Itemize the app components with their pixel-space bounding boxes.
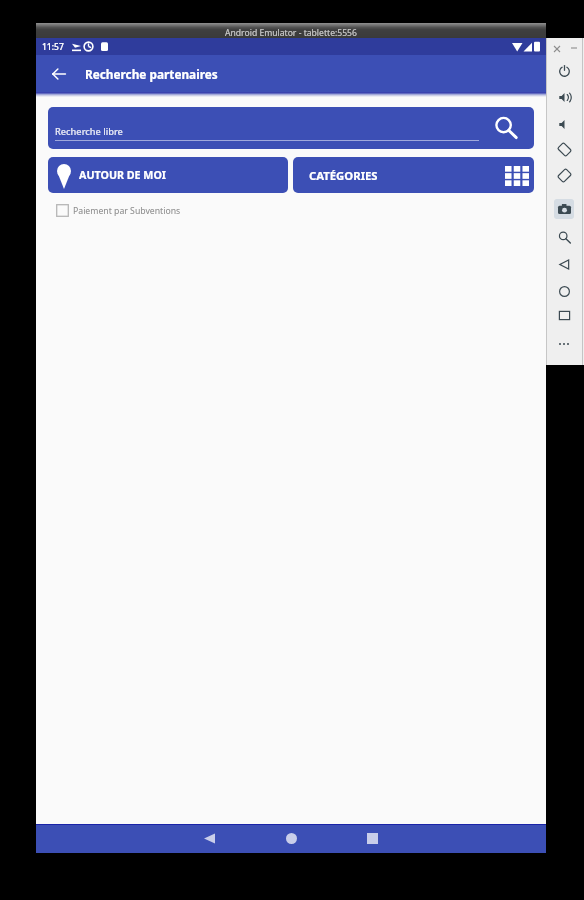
staticText: Paiement par Subventions [73, 205, 181, 217]
button[interactable]: Volume down [555, 115, 573, 133]
button[interactable]: Power [555, 61, 573, 79]
staticText: Recherche partenaires [85, 66, 218, 82]
button[interactable]: Back [47, 62, 71, 86]
staticText: AUTOUR DE MOI [79, 168, 167, 183]
button[interactable]: Paiement par Subventions [56, 204, 181, 217]
button[interactable]: Close [551, 43, 563, 55]
button[interactable]: More [557, 337, 571, 351]
button[interactable]: Recent apps [357, 824, 387, 853]
button[interactable]: Back [194, 824, 224, 853]
button[interactable]: Rotate right [555, 166, 573, 184]
staticText: 11:57 [42, 41, 64, 53]
button[interactable]: Home [276, 824, 306, 853]
staticText: Recherche libre [55, 125, 123, 138]
button[interactable]: Rotate left [555, 140, 573, 158]
button[interactable]: Recent apps [555, 306, 573, 324]
button[interactable]: Zoom [555, 228, 573, 246]
button[interactable]: Screenshot [554, 199, 574, 219]
staticText: Android Emulator - tablette:5556 [225, 27, 357, 39]
button[interactable]: Recherche libre [48, 107, 534, 149]
button[interactable]: AUTOUR DE MOI [48, 157, 288, 193]
button[interactable]: Minimize [568, 42, 580, 54]
button[interactable]: Volume up [555, 88, 573, 106]
button[interactable]: Search [492, 114, 520, 142]
button[interactable]: CATÉGORIES [293, 157, 534, 193]
button[interactable]: Home [555, 282, 573, 300]
button[interactable]: Back [555, 255, 573, 273]
staticText: CATÉGORIES [309, 168, 378, 183]
